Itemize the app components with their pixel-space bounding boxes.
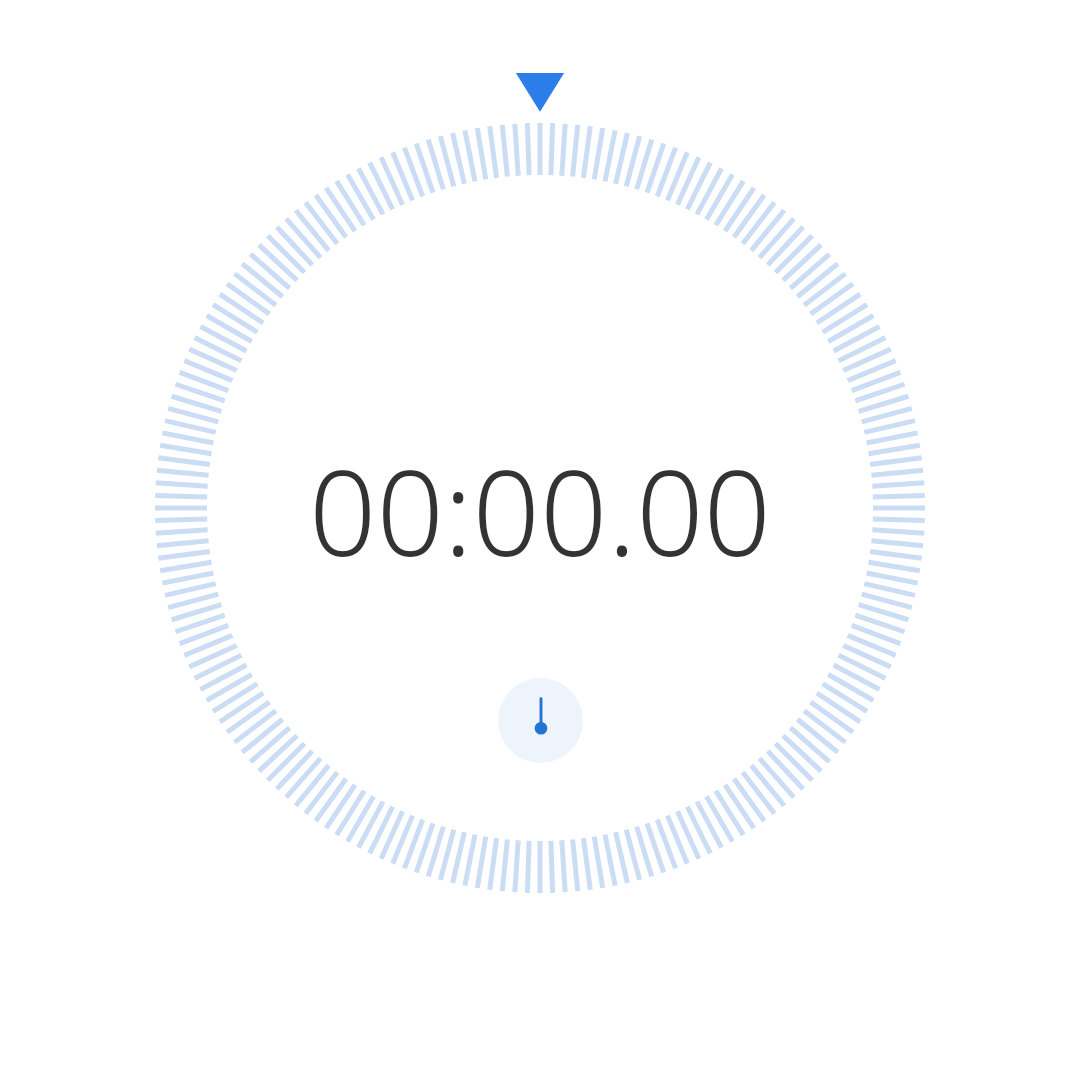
- button[interactable]: Start stopwatch: [498, 678, 583, 763]
- staticText: 00:00.00: [309, 430, 771, 591]
